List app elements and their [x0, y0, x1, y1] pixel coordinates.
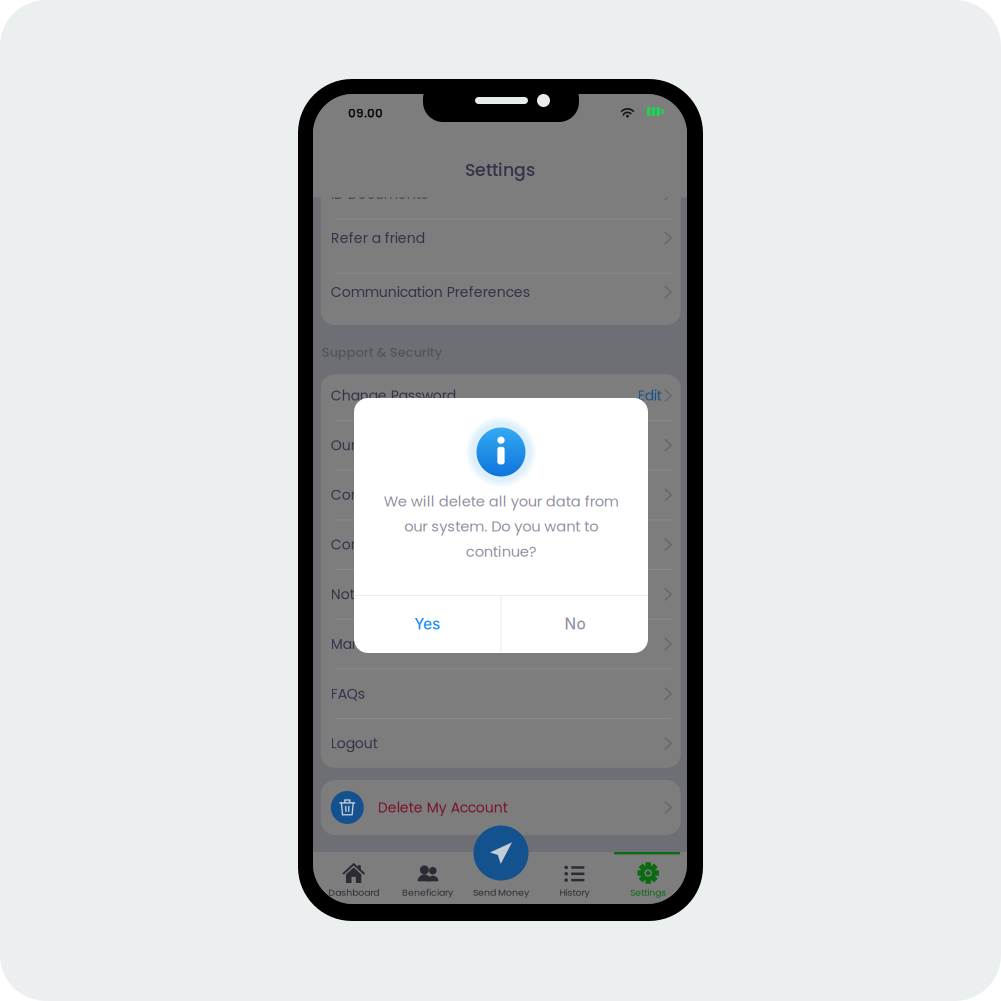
staticText: Notifications [331, 584, 416, 604]
button[interactable]: FAQs [321, 669, 681, 718]
staticText: Change Password [331, 386, 456, 405]
staticText: Beneficiary [402, 886, 453, 899]
staticText: FAQs [331, 684, 365, 703]
staticText: 09.00 [348, 105, 383, 122]
staticText: Settings [630, 886, 666, 899]
staticText: Refer a friend [331, 228, 425, 248]
staticText: We will delete all your data from our sy… [383, 491, 618, 562]
staticText: Contact Us [331, 485, 407, 505]
button[interactable]: Refer a friend [321, 219, 681, 273]
button[interactable]: Complaints [321, 520, 681, 569]
button[interactable]: Logout [321, 719, 681, 768]
button[interactable]: Send Money [464, 852, 538, 904]
staticText: Our Fees [331, 435, 392, 455]
staticText: No [564, 615, 585, 633]
button[interactable]: Contact Us [321, 471, 681, 519]
button[interactable]: Change Password [321, 371, 681, 420]
staticText: Edit [638, 386, 662, 405]
staticText: Logout [331, 734, 378, 753]
button[interactable]: No [502, 595, 648, 653]
button[interactable]: Beneficiary [391, 852, 464, 904]
staticText: Send Money [473, 886, 529, 899]
staticText: Delete My Account [378, 798, 508, 817]
button[interactable]: Delete My Account [321, 780, 681, 835]
staticText: Settings [465, 158, 535, 182]
button[interactable]: Manage Devices [321, 620, 681, 668]
staticText: Complaints [331, 535, 410, 554]
staticText: Manage Devices [331, 634, 446, 654]
button[interactable]: Send Money [473, 825, 528, 880]
staticText: Dashboard [328, 886, 379, 899]
staticText: Yes [414, 615, 440, 633]
button[interactable]: ID Documents [321, 175, 681, 218]
staticText: History [560, 886, 590, 899]
button[interactable]: Settings [611, 852, 685, 904]
button[interactable]: Dashboard [317, 852, 391, 904]
button[interactable]: Yes [354, 595, 500, 653]
staticText: Communication Preferences [331, 282, 530, 302]
staticText: ID Documents [331, 184, 428, 204]
button[interactable]: Communication Preferences [321, 274, 681, 327]
button[interactable]: Notifications [321, 570, 681, 619]
button[interactable]: History [538, 852, 611, 904]
button[interactable]: Our Fees [321, 421, 681, 470]
staticText: Support & Security [322, 343, 442, 361]
